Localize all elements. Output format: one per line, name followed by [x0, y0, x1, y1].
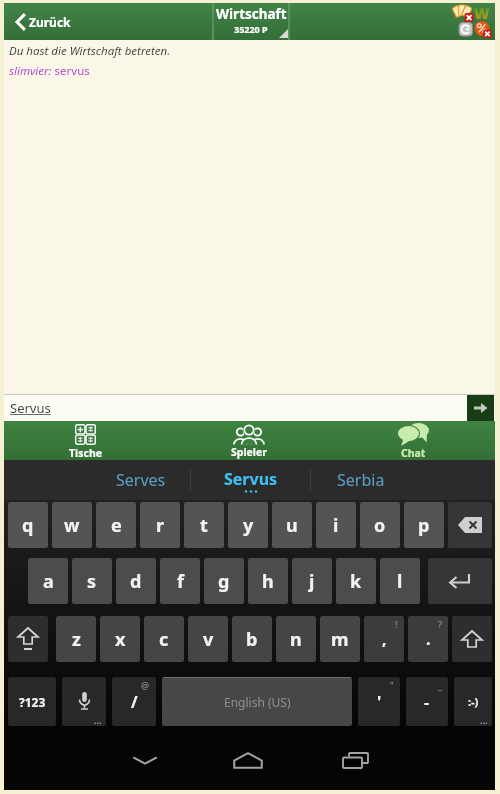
button[interactable]: Serves: [4, 460, 190, 500]
button[interactable]: s: [72, 558, 112, 604]
staticText: u: [286, 513, 298, 538]
button[interactable]: c: [144, 616, 184, 662]
button[interactable]: Serbia: [311, 460, 495, 500]
staticText: e: [111, 513, 122, 538]
button[interactable]: [230, 742, 266, 778]
button[interactable]: [452, 616, 492, 662]
staticText: Du hast die Wirtschaft betreten.: [9, 43, 171, 59]
button[interactable]: x: [100, 616, 140, 662]
button[interactable]: z: [56, 616, 96, 662]
button[interactable]: [467, 395, 494, 421]
staticText: d: [130, 569, 142, 594]
staticText: t: [200, 513, 208, 538]
button[interactable]: i: [316, 502, 356, 548]
button[interactable]: p: [404, 502, 444, 548]
button[interactable]: Servus: [191, 460, 310, 500]
staticText: Serbia: [337, 469, 385, 491]
staticText: q: [22, 513, 34, 538]
button[interactable]: n: [276, 616, 316, 662]
staticText: z: [72, 627, 81, 652]
button[interactable]: d: [116, 558, 156, 604]
staticText: p: [418, 513, 430, 538]
button[interactable]: j: [292, 558, 332, 604]
staticText: b: [246, 627, 258, 652]
button[interactable]: ?123: [8, 677, 56, 726]
staticText: Chat: [401, 446, 426, 460]
staticText: /: [131, 691, 138, 713]
staticText: :-): [468, 694, 479, 709]
button[interactable]: -: [406, 677, 448, 726]
button[interactable]: g: [204, 558, 244, 604]
staticText: g: [218, 569, 230, 594]
staticText: f: [177, 569, 184, 594]
staticText: ': [377, 691, 382, 713]
button[interactable]: [127, 742, 163, 778]
button[interactable]: :-): [454, 677, 492, 726]
button[interactable]: t: [184, 502, 224, 548]
staticText: l: [397, 569, 403, 594]
button[interactable]: Wirtschaft: [206, 3, 296, 40]
button[interactable]: e: [96, 502, 136, 548]
button[interactable]: w: [52, 502, 92, 548]
staticText: a: [43, 569, 54, 594]
staticText: _: [438, 679, 442, 691]
button[interactable]: a: [28, 558, 68, 604]
staticText: o: [374, 513, 386, 538]
button[interactable]: Chat: [331, 421, 495, 460]
button[interactable]: Zurück: [15, 14, 71, 30]
button[interactable]: ,: [364, 616, 404, 662]
button[interactable]: /: [112, 677, 156, 726]
staticText: Spieler: [231, 445, 267, 459]
staticText: h: [262, 569, 274, 594]
staticText: ?: [438, 618, 442, 630]
staticText: ...: [94, 714, 102, 726]
staticText: slimvier: servus: [9, 63, 90, 79]
button[interactable]: ': [358, 677, 400, 726]
button[interactable]: v: [188, 616, 228, 662]
staticText: c: [159, 627, 169, 652]
staticText: w: [64, 513, 80, 538]
staticText: j: [309, 569, 315, 594]
button[interactable]: q: [8, 502, 48, 548]
button[interactable]: k: [336, 558, 376, 604]
staticText: @: [141, 679, 150, 691]
button[interactable]: o: [360, 502, 400, 548]
staticText: ...: [480, 714, 488, 726]
button[interactable]: y: [228, 502, 268, 548]
button[interactable]: l: [380, 558, 420, 604]
button[interactable]: ...: [62, 677, 106, 726]
staticText: ?123: [19, 694, 46, 710]
button[interactable]: .: [408, 616, 448, 662]
button[interactable]: [8, 616, 48, 662]
staticText: Servus: [10, 399, 51, 417]
staticText: W: [474, 3, 490, 23]
staticText: !: [395, 618, 398, 630]
staticText: n: [290, 627, 302, 652]
staticText: ": [390, 679, 394, 691]
staticText: Serves: [116, 469, 166, 491]
staticText: Zurück: [29, 14, 71, 30]
button[interactable]: Tische: [4, 421, 167, 460]
button[interactable]: b: [232, 616, 272, 662]
button[interactable]: u: [272, 502, 312, 548]
staticText: x: [115, 627, 126, 652]
staticText: k: [350, 569, 362, 594]
button[interactable]: r: [140, 502, 180, 548]
button[interactable]: [448, 502, 492, 548]
staticText: s: [87, 569, 97, 594]
button[interactable]: Spieler: [167, 421, 331, 460]
staticText: m: [331, 627, 349, 652]
staticText: 35220 P: [234, 23, 268, 35]
button[interactable]: h: [248, 558, 288, 604]
button[interactable]: m: [320, 616, 360, 662]
staticText: i: [333, 513, 339, 538]
button[interactable]: [337, 742, 373, 778]
staticText: Tische: [69, 446, 102, 460]
staticText: r: [156, 513, 165, 538]
staticText: English (US): [224, 694, 291, 710]
staticText: -: [424, 691, 430, 713]
button[interactable]: English (US): [162, 677, 352, 726]
button[interactable]: f: [160, 558, 200, 604]
staticText: Wirtschaft: [216, 5, 287, 23]
button[interactable]: [428, 558, 492, 604]
